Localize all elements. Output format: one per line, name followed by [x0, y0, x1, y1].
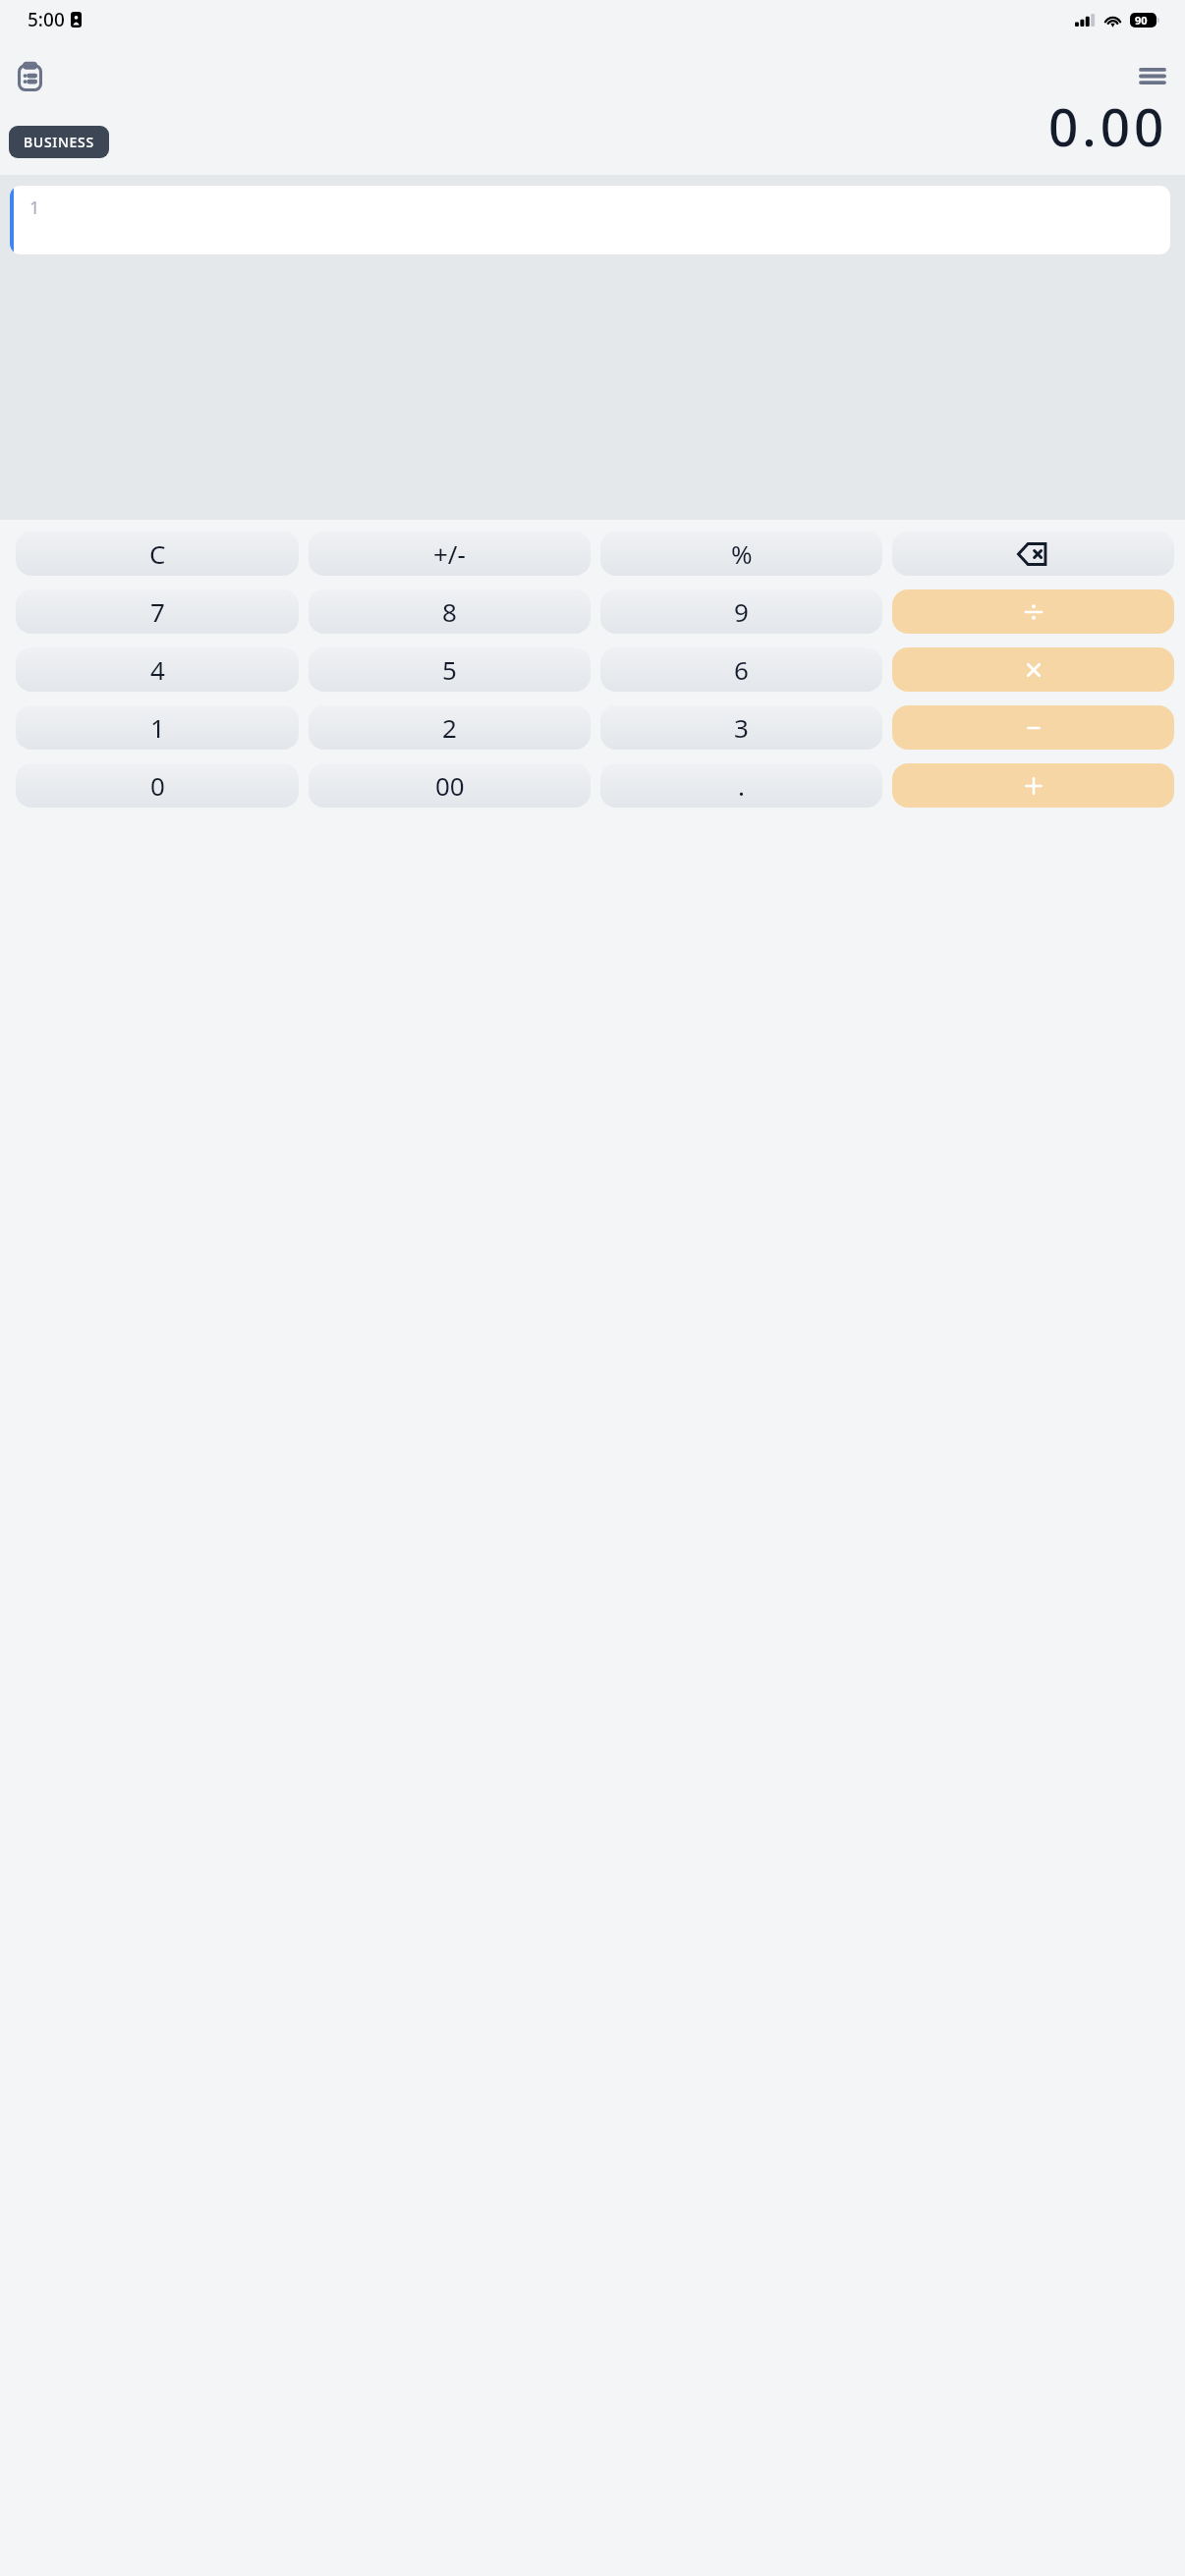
- button[interactable]: Menu: [1130, 53, 1175, 98]
- button[interactable]: 1: [10, 186, 1170, 254]
- button[interactable]: .: [600, 763, 882, 808]
- button[interactable]: [892, 589, 1174, 634]
- staticText: 6: [734, 652, 749, 687]
- staticText: 3: [734, 710, 749, 745]
- staticText: 0: [150, 768, 165, 803]
- button[interactable]: BUSINESS: [9, 126, 109, 158]
- button[interactable]: [892, 647, 1174, 692]
- staticText: 1: [150, 710, 165, 745]
- button[interactable]: 6: [600, 647, 882, 692]
- staticText: 00: [435, 768, 465, 803]
- button[interactable]: 4: [16, 647, 299, 692]
- button[interactable]: 9: [600, 589, 882, 634]
- staticText: 9: [734, 594, 749, 629]
- staticText: .: [738, 768, 745, 803]
- staticText: 0.00: [1048, 90, 1168, 161]
- button[interactable]: 00: [309, 763, 591, 808]
- staticText: 90: [1135, 13, 1148, 28]
- button[interactable]: C: [16, 532, 299, 576]
- staticText: 5:00: [28, 7, 65, 32]
- button[interactable]: 3: [600, 705, 882, 750]
- staticText: 8: [442, 594, 457, 629]
- staticText: 5: [442, 652, 457, 687]
- button[interactable]: 8: [309, 589, 591, 634]
- button[interactable]: Receipts: [6, 53, 53, 100]
- button[interactable]: [892, 705, 1174, 750]
- staticText: +/-: [433, 536, 466, 571]
- button[interactable]: %: [600, 532, 882, 576]
- staticText: 7: [150, 594, 165, 629]
- button[interactable]: 2: [309, 705, 591, 750]
- button[interactable]: 1: [16, 705, 299, 750]
- button[interactable]: 0: [16, 763, 299, 808]
- staticText: 4: [150, 652, 165, 687]
- button[interactable]: +/-: [309, 532, 591, 576]
- staticText: %: [731, 536, 753, 571]
- button[interactable]: Backspace: [892, 532, 1174, 576]
- staticText: 1: [29, 196, 40, 220]
- staticText: BUSINESS: [24, 133, 94, 151]
- staticText: 2: [442, 710, 457, 745]
- button[interactable]: 5: [309, 647, 591, 692]
- button[interactable]: [892, 763, 1174, 808]
- button[interactable]: 7: [16, 589, 299, 634]
- staticText: C: [149, 536, 166, 571]
